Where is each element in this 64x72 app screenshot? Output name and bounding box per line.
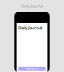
staticText: New Entry xyxy=(26,67,38,70)
staticText: Daily Journal xyxy=(21,3,43,9)
button[interactable]: New Entry xyxy=(18,67,46,71)
staticText: Daily Journal xyxy=(18,25,42,30)
